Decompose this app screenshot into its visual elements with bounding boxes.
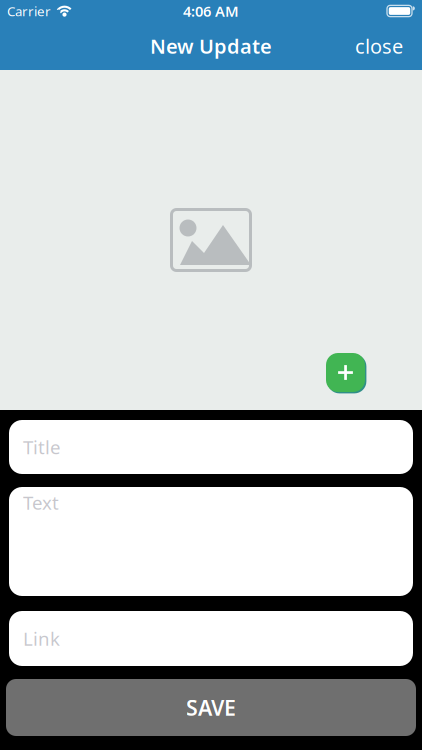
button[interactable]: Add image <box>326 353 365 392</box>
button[interactable]: Link <box>9 611 413 666</box>
staticText: Carrier <box>7 2 51 20</box>
staticText: SAVE <box>186 693 236 722</box>
staticText: 4:06 AM <box>183 1 239 21</box>
staticText: Title <box>23 435 61 459</box>
staticText: close <box>355 33 403 59</box>
staticText: Text <box>23 490 59 515</box>
staticText: Link <box>23 626 60 651</box>
button[interactable]: Title <box>9 420 413 474</box>
button[interactable]: Text <box>9 487 413 596</box>
staticText: New Update <box>150 33 272 59</box>
button[interactable]: close <box>355 33 422 59</box>
button[interactable]: SAVE <box>6 679 416 736</box>
